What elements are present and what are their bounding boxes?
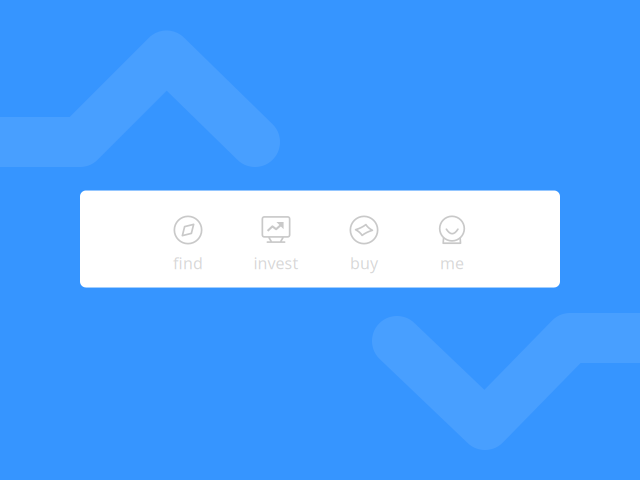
staticText: buy — [350, 252, 378, 274]
button[interactable]: invest — [232, 190, 320, 287]
staticText: invest — [253, 252, 298, 274]
staticText: me — [440, 252, 464, 274]
button[interactable]: me — [408, 190, 496, 287]
button[interactable]: find — [144, 190, 232, 287]
button[interactable]: buy — [320, 190, 408, 287]
staticText: find — [173, 252, 203, 274]
